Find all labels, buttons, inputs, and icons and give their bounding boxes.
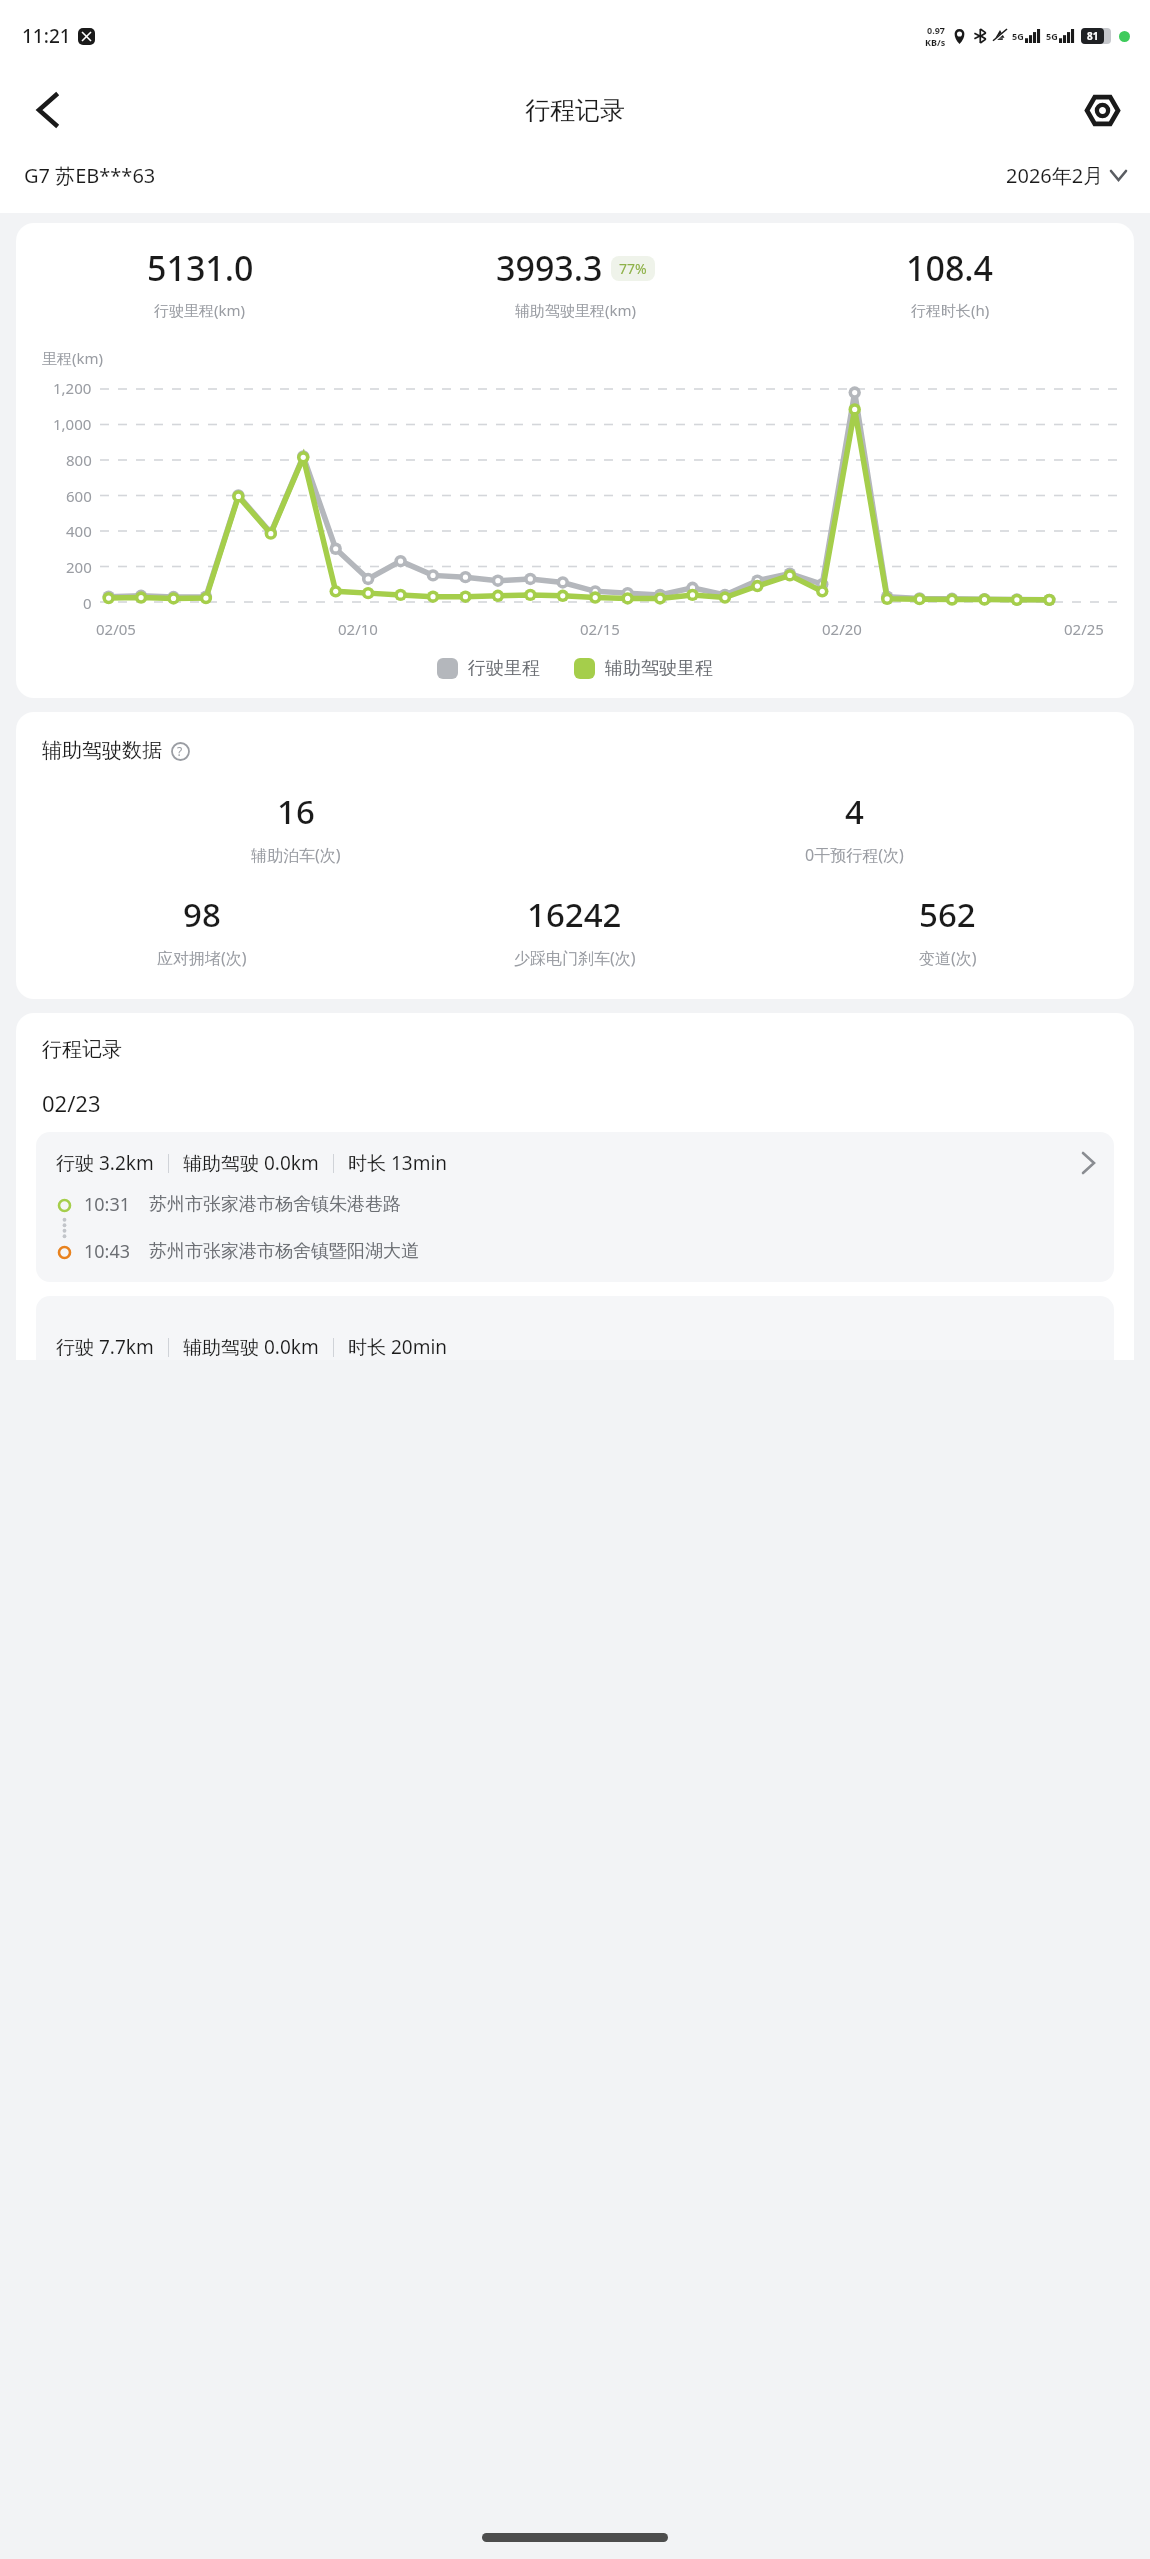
staticText: 苏州市张家港市杨舍镇暨阳湖大道 <box>149 1240 419 1263</box>
staticText: 行程时长(h) <box>911 300 990 320</box>
staticText: 苏州市张家港市杨舍镇朱港巷路 <box>149 1193 401 1216</box>
staticText: 辅助驾驶数据 <box>42 738 162 763</box>
staticText: 16242 <box>527 892 622 937</box>
staticText: 562 <box>919 892 976 937</box>
staticText: 02/25 <box>1064 619 1104 639</box>
staticText: 时长 13min <box>348 1150 448 1176</box>
staticText: 98 <box>183 892 221 937</box>
staticText: 辅助驾驶 0.0km <box>183 1150 319 1176</box>
staticText: 5G <box>1012 30 1024 42</box>
staticText: 1,200 <box>53 378 92 398</box>
staticText: 800 <box>66 450 92 470</box>
staticText: ? <box>177 743 183 759</box>
staticText: 77% <box>619 259 647 278</box>
staticText: 辅助驾驶里程(km) <box>515 300 637 320</box>
staticText: KB/s <box>925 36 946 48</box>
staticText: 应对拥堵(次) <box>157 947 247 969</box>
staticText: 行驶 3.2km <box>56 1150 154 1176</box>
staticText: 辅助驾驶里程 <box>605 657 713 680</box>
staticText: 时长 20min <box>348 1334 448 1360</box>
staticText: 400 <box>66 521 92 541</box>
staticText: 02/15 <box>580 619 620 639</box>
staticText: 81 <box>1087 29 1099 43</box>
button[interactable]: Back <box>20 83 74 137</box>
staticText: 200 <box>66 557 92 577</box>
staticText: 0.97 <box>927 24 945 36</box>
staticText: 02/20 <box>822 619 862 639</box>
button[interactable]: 2026年2月 <box>1006 162 1126 189</box>
staticText: 10:31 <box>84 1192 131 1217</box>
button[interactable]: 行驶 3.2km <box>36 1132 1114 1282</box>
staticText: 11:21 <box>22 23 71 49</box>
staticText: 2026年2月 <box>1006 162 1104 189</box>
staticText: 辅助驾驶 0.0km <box>183 1334 319 1360</box>
staticText: 行驶里程 <box>468 657 540 680</box>
button[interactable]: 行驶 7.7km <box>36 1296 1114 1360</box>
staticText: 行驶里程(km) <box>154 300 246 320</box>
staticText: 3993.3 <box>496 245 603 291</box>
staticText: 02/23 <box>42 1088 101 1118</box>
staticText: G7 苏EB***63 <box>24 162 156 189</box>
staticText: 5G <box>1046 30 1058 42</box>
staticText: 1,000 <box>53 414 92 434</box>
staticText: 02/05 <box>96 619 136 639</box>
staticText: 600 <box>66 486 92 506</box>
staticText: 行驶 7.7km <box>56 1334 154 1360</box>
staticText: 02/10 <box>338 619 378 639</box>
staticText: 辅助泊车(次) <box>251 844 341 866</box>
staticText: 少踩电门刹车(次) <box>514 947 636 969</box>
button[interactable]: Settings <box>1076 84 1128 136</box>
staticText: 里程(km) <box>42 348 104 368</box>
staticText: 0 <box>83 593 92 613</box>
staticText: 108.4 <box>906 245 994 291</box>
staticText: 变道(次) <box>919 947 977 969</box>
staticText: 4 <box>845 789 864 834</box>
staticText: 10:43 <box>84 1239 131 1264</box>
staticText: 0干预行程(次) <box>805 844 904 866</box>
staticText: 5131.0 <box>147 245 254 291</box>
button[interactable]: Info <box>168 739 192 763</box>
staticText: 行程记录 <box>42 1037 122 1062</box>
staticText: 行程记录 <box>525 95 625 126</box>
staticText: 16 <box>277 789 315 834</box>
